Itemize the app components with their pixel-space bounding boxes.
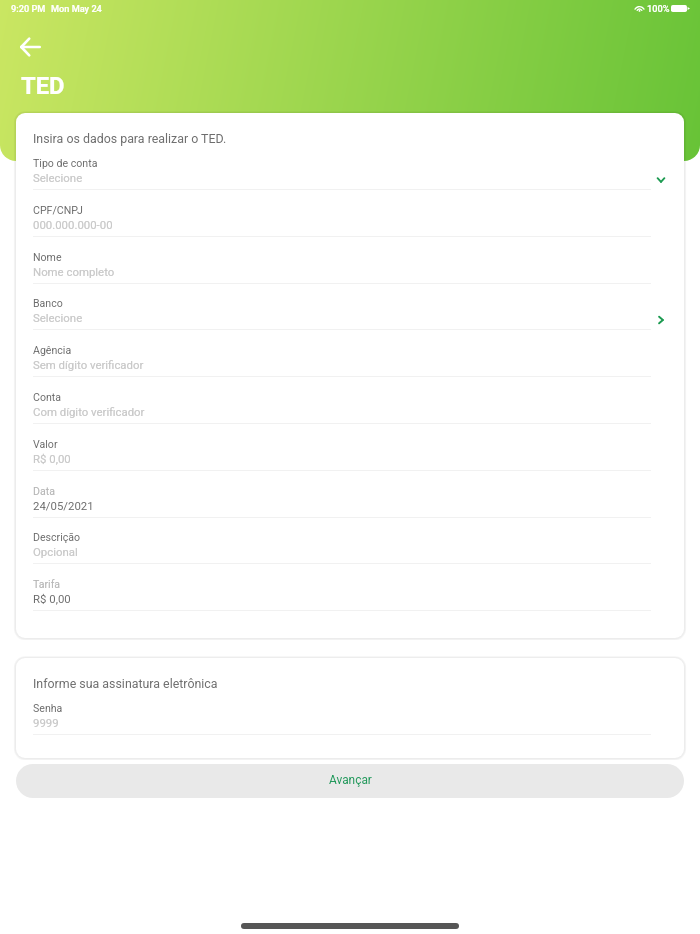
button[interactable]: Back bbox=[13, 30, 47, 64]
staticText: Informe sua assinatura eletrônica bbox=[33, 676, 218, 691]
staticText: CPF/CNPJ bbox=[33, 204, 83, 216]
button[interactable]: Avançar bbox=[16, 764, 684, 798]
staticText: Conta bbox=[33, 391, 62, 403]
staticText: Tarifa bbox=[33, 578, 61, 590]
staticText: Opcional bbox=[33, 545, 78, 558]
staticText: Valor bbox=[33, 438, 58, 450]
staticText: R$ 0,00 bbox=[33, 592, 71, 605]
button[interactable]: Tipo de conta bbox=[16, 156, 684, 187]
staticText: TED bbox=[21, 72, 65, 100]
staticText: 24/05/2021 bbox=[33, 499, 94, 512]
button[interactable]: Tarifa bbox=[16, 577, 684, 608]
button[interactable]: Nome bbox=[16, 250, 684, 281]
button[interactable]: Data bbox=[16, 484, 684, 515]
staticText: Insira os dados para realizar o TED. bbox=[33, 131, 227, 146]
staticText: 9:20 PM bbox=[11, 3, 46, 14]
button[interactable]: CPF/CNPJ bbox=[16, 203, 684, 234]
button[interactable]: Descrição bbox=[16, 530, 684, 561]
button[interactable]: Banco bbox=[16, 296, 684, 327]
staticText: Selecione bbox=[33, 171, 83, 184]
staticText: Tipo de conta bbox=[33, 157, 98, 169]
staticText: 100% bbox=[647, 3, 670, 14]
staticText: Senha bbox=[33, 702, 63, 714]
staticText: Data bbox=[33, 485, 55, 497]
staticText: 000.000.000-00 bbox=[33, 218, 113, 231]
staticText: Selecione bbox=[33, 311, 83, 324]
staticText: 9999 bbox=[33, 716, 59, 729]
button[interactable]: Senha bbox=[16, 701, 684, 732]
staticText: Agência bbox=[33, 344, 72, 356]
staticText: Nome completo bbox=[33, 265, 115, 278]
staticText: Nome bbox=[33, 251, 62, 263]
staticText: Mon May 24 bbox=[51, 3, 102, 14]
staticText: Banco bbox=[33, 297, 63, 309]
staticText: Avançar bbox=[329, 773, 372, 787]
button[interactable]: Valor bbox=[16, 437, 684, 468]
staticText: Descrição bbox=[33, 531, 81, 543]
button[interactable]: Conta bbox=[16, 390, 684, 421]
staticText: Com dígito verificador bbox=[33, 405, 145, 418]
staticText: Sem dígito verificador bbox=[33, 358, 144, 371]
staticText: R$ 0,00 bbox=[33, 452, 71, 465]
button[interactable]: Agência bbox=[16, 343, 684, 374]
